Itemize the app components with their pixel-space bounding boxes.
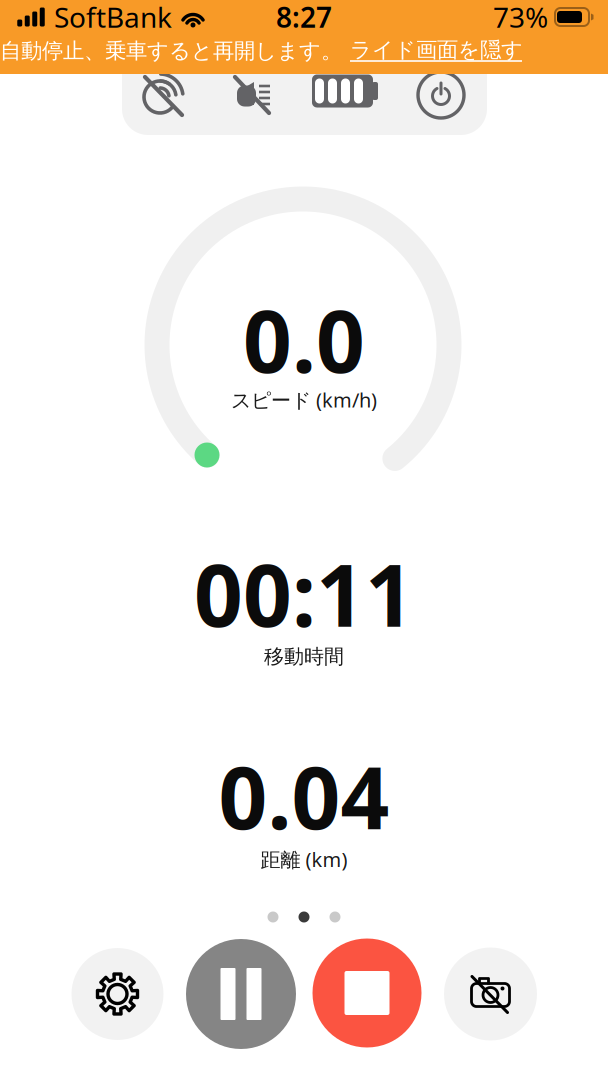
button[interactable]: Pause: [186, 939, 296, 1049]
staticText: 0.0: [243, 283, 365, 396]
staticText: 8:27: [276, 0, 332, 36]
staticText: 自動停止、乗車すると再開します。: [0, 38, 342, 64]
staticText: SoftBank: [54, 0, 172, 36]
staticText: 距離 (km): [260, 846, 347, 872]
button[interactable]: Battery: [312, 69, 378, 113]
staticText: スピード (km/h): [231, 386, 377, 413]
button[interactable]: Camera off: [444, 947, 537, 1040]
staticText: 0.04: [218, 740, 389, 853]
button[interactable]: ライド画面を隠す: [350, 38, 608, 64]
button[interactable]: Sound muted: [228, 72, 274, 118]
button[interactable]: Settings: [71, 948, 163, 1040]
staticText: 移動時間: [264, 644, 344, 669]
button[interactable]: Sensor disconnected: [142, 71, 186, 119]
button[interactable]: Stop: [312, 938, 421, 1047]
button[interactable]: Power: [417, 70, 465, 120]
staticText: ライド画面を隠す: [350, 37, 523, 63]
staticText: 73%: [493, 0, 548, 36]
staticText: 00:11: [194, 537, 414, 650]
